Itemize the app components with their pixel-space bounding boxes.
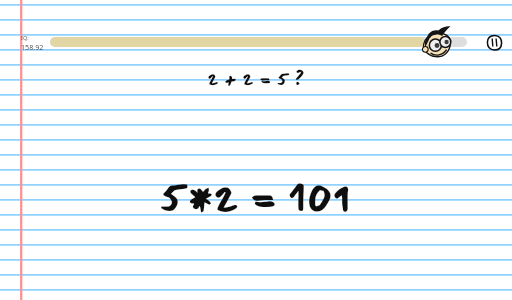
- staticText: IQ:: [21, 34, 29, 42]
- button[interactable]: Pause: [486, 34, 503, 51]
- staticText: 5*2 = 101: [0, 167, 511, 300]
- staticText: 2 + 2 = 5 ?: [0, 66, 512, 300]
- button[interactable]: [50, 37, 467, 47]
- staticText: 158.92: [21, 42, 44, 52]
